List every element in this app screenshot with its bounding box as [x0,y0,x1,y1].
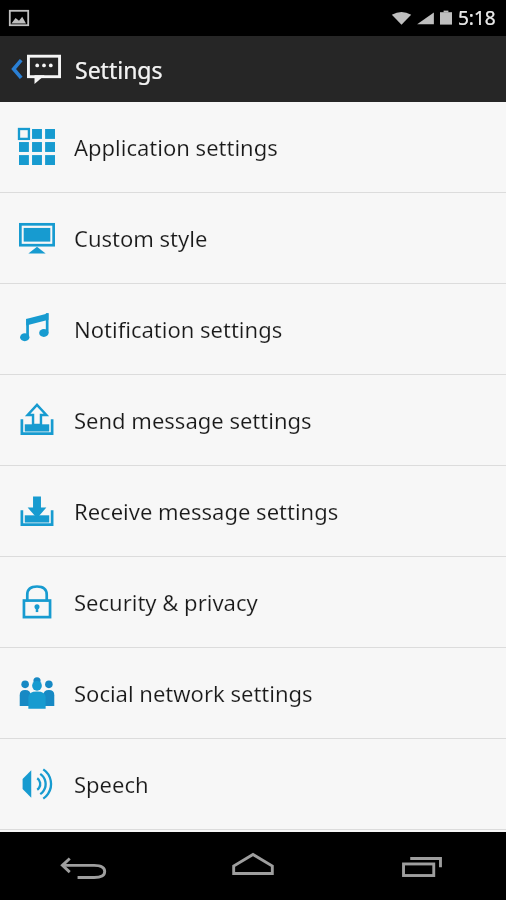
staticText: Send message settings [74,405,312,435]
button[interactable]: Application settings [0,102,506,192]
button[interactable]: Send message settings [0,375,506,465]
button[interactable]: Back [0,832,168,900]
button[interactable]: Notification settings [0,284,506,374]
button[interactable]: Back to messages [6,47,65,91]
button[interactable]: Custom style [0,193,506,283]
staticText: Speech [74,769,149,799]
staticText: Notification settings [74,314,283,344]
staticText: Custom style [74,223,208,253]
button[interactable]: Home [168,832,337,900]
staticText: Application settings [74,132,278,162]
staticText: Security & privacy [74,587,258,617]
button[interactable]: Security & privacy [0,557,506,647]
button[interactable]: Speech [0,739,506,829]
staticText: 5:18 [458,5,496,31]
staticText: Settings [75,54,163,85]
staticText: Receive message settings [74,496,339,526]
staticText: Social network settings [74,678,313,708]
button[interactable]: Social network settings [0,648,506,738]
button[interactable]: Recent apps [337,832,506,900]
button[interactable]: Receive message settings [0,466,506,556]
